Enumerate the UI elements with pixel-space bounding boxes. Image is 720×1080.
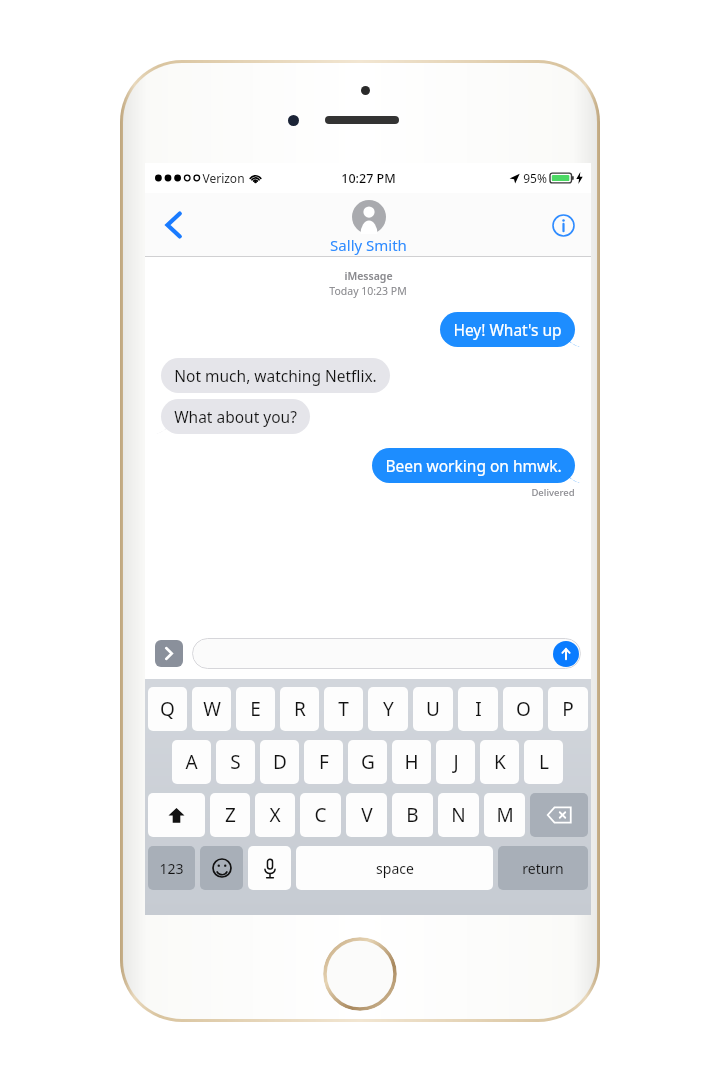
staticText: 123: [159, 859, 184, 878]
staticText: Sally Smith: [330, 235, 407, 255]
button[interactable]: I: [458, 687, 498, 731]
staticText: P: [562, 696, 574, 722]
button[interactable]: C: [300, 793, 341, 837]
staticText: C: [314, 802, 327, 828]
button[interactable]: Details: [543, 205, 583, 245]
button[interactable]: X: [255, 793, 295, 837]
button[interactable]: Not much, watching Netflix.: [161, 358, 390, 393]
button[interactable]: O: [503, 687, 543, 731]
staticText: A: [185, 749, 198, 775]
button[interactable]: Been working on hmwk.: [372, 448, 575, 483]
staticText: E: [250, 696, 261, 722]
button[interactable]: G: [348, 740, 387, 784]
staticText: H: [404, 749, 419, 775]
staticText: K: [494, 749, 506, 775]
button[interactable]: U: [413, 687, 453, 731]
staticText: B: [406, 802, 419, 828]
staticText: I: [475, 696, 482, 722]
button[interactable]: N: [438, 793, 479, 837]
button[interactable]: D: [260, 740, 299, 784]
button[interactable]: Q: [148, 687, 187, 731]
button[interactable]: P: [548, 687, 588, 731]
staticText: X: [269, 802, 281, 828]
staticText: N: [451, 802, 466, 828]
staticText: return: [522, 859, 564, 878]
staticText: O: [516, 696, 531, 722]
button[interactable]: Back: [151, 203, 195, 247]
staticText: Not much, watching Netflix.: [174, 365, 377, 386]
button[interactable]: A: [172, 740, 211, 784]
staticText: S: [230, 749, 241, 775]
staticText: U: [426, 696, 440, 722]
button[interactable]: V: [346, 793, 387, 837]
button[interactable]: Send: [192, 638, 581, 669]
staticText: What about you?: [174, 406, 297, 427]
staticText: R: [294, 696, 306, 722]
button[interactable]: J: [436, 740, 475, 784]
staticText: 95%: [523, 170, 547, 186]
staticText: M: [496, 802, 514, 828]
button[interactable]: M: [484, 793, 525, 837]
button[interactable]: Sally Smith: [330, 200, 407, 255]
staticText: Y: [383, 696, 394, 722]
button[interactable]: Dictation: [248, 846, 291, 890]
button[interactable]: B: [392, 793, 433, 837]
staticText: space: [376, 859, 414, 878]
button[interactable]: T: [324, 687, 363, 731]
staticText: Been working on hmwk.: [385, 455, 562, 476]
staticText: G: [361, 749, 375, 775]
button[interactable]: Emoji: [200, 846, 243, 890]
staticText: Q: [160, 696, 175, 722]
button[interactable]: E: [236, 687, 275, 731]
button[interactable]: 123: [148, 846, 195, 890]
staticText: D: [273, 749, 287, 775]
staticText: W: [203, 696, 221, 722]
button[interactable]: K: [480, 740, 519, 784]
staticText: Z: [225, 802, 236, 828]
button[interactable]: App drawer: [155, 640, 183, 667]
button[interactable]: Home: [323, 937, 397, 1011]
staticText: F: [319, 749, 329, 775]
button[interactable]: space: [296, 846, 493, 890]
button[interactable]: What about you?: [161, 399, 310, 434]
button[interactable]: S: [216, 740, 255, 784]
staticText: T: [338, 696, 349, 722]
button[interactable]: Send: [553, 641, 579, 667]
button[interactable]: L: [524, 740, 563, 784]
staticText: Today 10:23 PM: [329, 284, 407, 298]
button[interactable]: Z: [210, 793, 250, 837]
button[interactable]: Y: [368, 687, 408, 731]
staticText: Verizon: [202, 170, 245, 186]
staticText: L: [539, 749, 549, 775]
button[interactable]: F: [304, 740, 343, 784]
button[interactable]: W: [192, 687, 231, 731]
button[interactable]: Hey! What's up: [440, 312, 575, 347]
staticText: Hey! What's up: [453, 319, 562, 340]
button[interactable]: H: [392, 740, 431, 784]
staticText: Delivered: [531, 486, 575, 499]
button[interactable]: R: [280, 687, 319, 731]
staticText: iMessage: [344, 269, 393, 283]
button[interactable]: Backspace: [530, 793, 588, 837]
button[interactable]: return: [498, 846, 588, 890]
staticText: J: [453, 749, 459, 775]
staticText: 10:27 PM: [341, 170, 396, 187]
button[interactable]: Shift: [148, 793, 205, 837]
staticText: V: [361, 802, 373, 828]
